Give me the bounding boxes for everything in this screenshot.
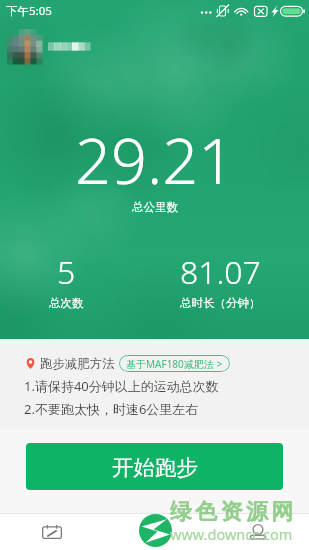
button[interactable]: 开始跑步 [26,443,283,490]
staticText: 总次数 [49,296,84,310]
staticText: 5 [57,250,76,294]
staticText: 总时长（分钟） [180,296,261,310]
staticText: 29.21 [75,117,235,203]
staticText: 下午5:05 [6,3,52,19]
button[interactable]: Profile [206,514,309,550]
staticText: 1.请保持40分钟以上的运动总次数 [24,377,219,395]
button[interactable]: Records [0,514,103,550]
staticText: 绿色资源网 [168,498,295,526]
staticText: 跑步减肥方法 [40,356,115,372]
staticText: 2.不要跑太快，时速6公里左右 [24,400,199,418]
staticText: 总公里数 [132,200,178,214]
staticText: 基于MAF180减肥法 > [126,357,223,371]
staticText: 开始跑步 [112,454,198,481]
staticText: www.downcc.com [170,524,293,544]
button[interactable]: Run [103,514,206,550]
button[interactable]: 基于MAF180减肥法 > [119,355,230,372]
staticText: 81.07 [180,250,261,294]
button[interactable]: User avatar [7,29,42,64]
